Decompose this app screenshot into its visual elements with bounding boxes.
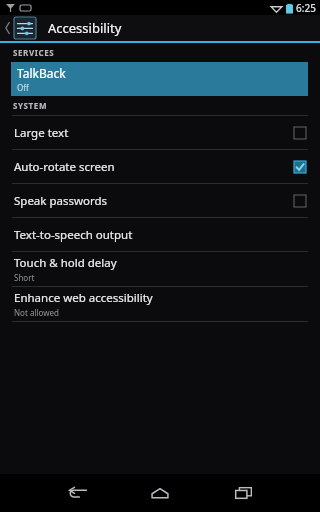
button[interactable]: Home [139,476,181,510]
button[interactable]: Large text [0,116,320,149]
button[interactable]: Recent apps [222,476,264,510]
button[interactable]: Navigate up [0,17,40,39]
staticText: Enhance web accessibility [14,290,153,306]
staticText: Text-to-speech output [14,227,133,243]
staticText: SERVICES [13,47,55,58]
staticText: Touch & hold delay [14,255,117,271]
staticText: TalkBack [17,65,66,81]
button[interactable]: Speak passwords [0,184,320,217]
button[interactable]: Text-to-speech output [0,218,320,251]
button[interactable]: TalkBack [11,62,308,96]
staticText: 6:25 [296,1,316,15]
staticText: Large text [14,125,294,141]
staticText: Accessibility [48,19,122,37]
staticText: Auto-rotate screen [14,159,294,175]
staticText: Short [14,272,35,283]
staticText: SYSTEM [13,100,48,111]
button[interactable]: Enhance web accessibility [0,287,320,321]
staticText: Speak passwords [14,193,294,209]
button[interactable]: Auto-rotate screen [0,150,320,183]
button[interactable]: Back [56,476,98,510]
staticText: Off [17,82,29,93]
staticText: Not allowed [14,307,59,318]
button[interactable]: Touch & hold delay [0,252,320,286]
